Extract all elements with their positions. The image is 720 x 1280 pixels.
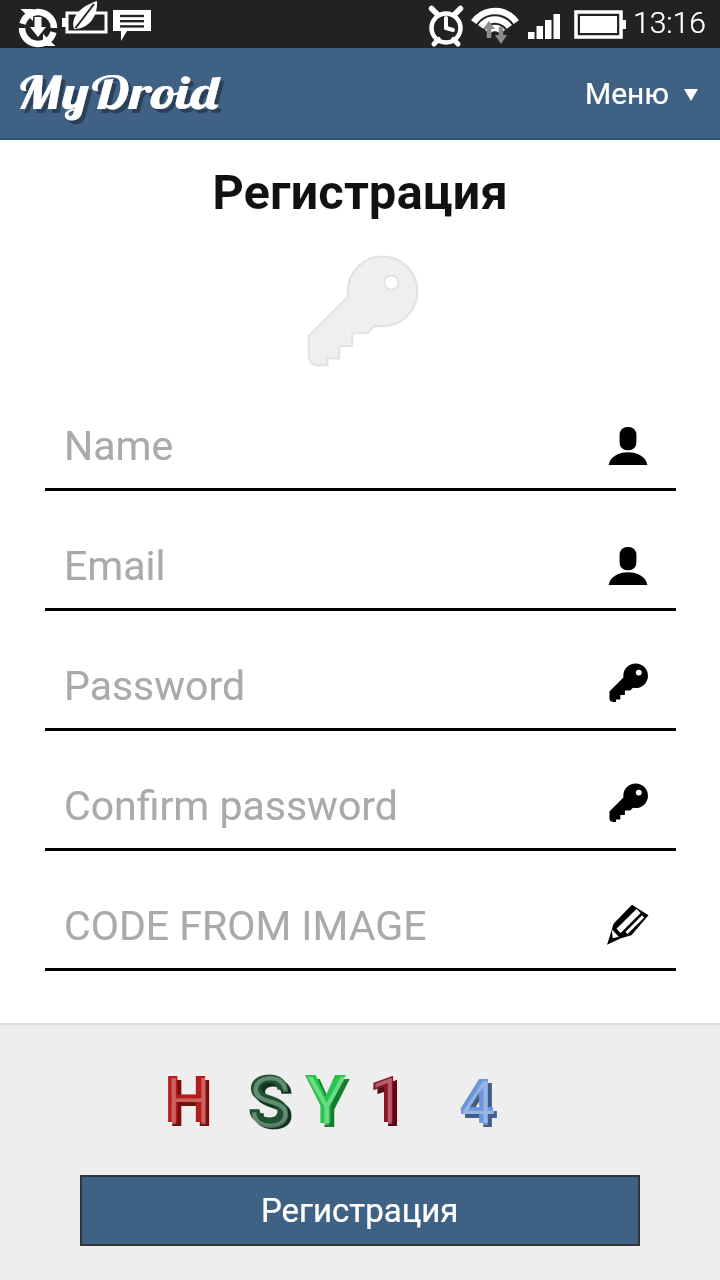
- staticText: Регистрация: [261, 1191, 459, 1230]
- button[interactable]: Password: [45, 636, 676, 731]
- button[interactable]: Регистрация: [80, 1175, 640, 1246]
- staticText: S: [247, 1060, 291, 1142]
- staticText: Password: [64, 662, 246, 710]
- staticText: 1: [370, 1065, 406, 1140]
- staticText: H: [166, 1065, 212, 1140]
- button[interactable]: Confirm password: [45, 756, 676, 851]
- staticText: 4: [461, 1067, 496, 1140]
- staticText: H: [168, 1067, 214, 1142]
- staticText: Name: [64, 422, 174, 470]
- staticText: S: [251, 1064, 295, 1146]
- other: Email: [607, 541, 649, 583]
- staticText: 4: [463, 1069, 499, 1142]
- other: Code from image: [607, 901, 649, 943]
- staticText: Confirm password: [64, 782, 398, 830]
- staticText: Y: [307, 1064, 347, 1141]
- staticText: CODE FROM IMAGE: [64, 902, 427, 950]
- other: Confirm password: [607, 781, 649, 823]
- staticText: Email: [64, 542, 166, 590]
- staticText: Меню: [585, 76, 669, 111]
- button[interactable]: Меню: [561, 63, 720, 126]
- staticText: Регистрация: [0, 164, 720, 221]
- staticText: MyDroid: [21, 67, 225, 125]
- staticText: MyDroid: [17, 63, 221, 121]
- button[interactable]: Email: [45, 516, 676, 611]
- staticText: Y: [305, 1062, 346, 1139]
- button[interactable]: Refresh captcha image: [155, 1060, 520, 1132]
- other: Name: [607, 421, 649, 463]
- staticText: H: [164, 1063, 210, 1138]
- staticText: 1: [372, 1067, 409, 1142]
- button[interactable]: Name: [45, 396, 676, 491]
- staticText: 1: [368, 1063, 405, 1138]
- staticText: Y: [309, 1066, 350, 1143]
- staticText: 13:16: [633, 5, 706, 40]
- staticText: S: [249, 1062, 291, 1144]
- button[interactable]: CODE FROM IMAGE: [45, 876, 676, 971]
- other: Password: [607, 661, 649, 703]
- staticText: 4: [459, 1065, 495, 1138]
